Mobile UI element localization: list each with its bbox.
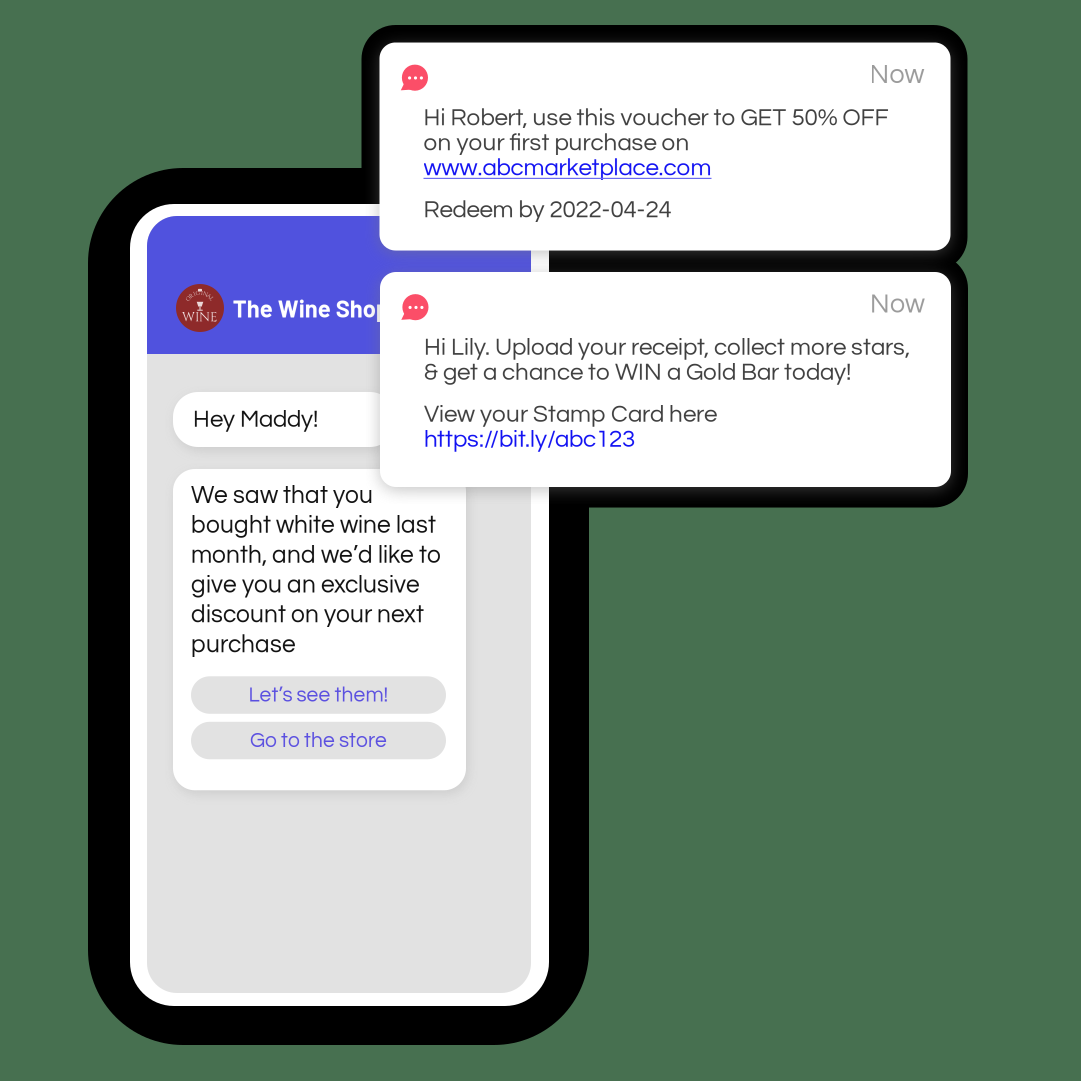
staticText: I bbox=[193, 290, 195, 298]
staticText: www.abcmarketplace.com bbox=[423, 156, 711, 180]
staticText: WINE bbox=[182, 308, 218, 326]
button[interactable]: Let’s see them! bbox=[191, 676, 446, 714]
staticText: View your Stamp Card here bbox=[424, 402, 717, 427]
staticText: L bbox=[210, 295, 213, 302]
staticText: G bbox=[196, 289, 201, 297]
staticText: R bbox=[189, 292, 193, 300]
staticText: Now bbox=[869, 61, 924, 89]
staticText: We saw that you bought white wine last m… bbox=[191, 483, 441, 657]
staticText: The Wine Shop bbox=[233, 294, 389, 322]
staticText: O bbox=[186, 295, 191, 302]
staticText: N bbox=[203, 290, 208, 298]
staticText: Now bbox=[870, 291, 925, 318]
staticText: Let’s see them! bbox=[248, 684, 388, 706]
staticText: Hi Robert, use this voucher to GET 50% O… bbox=[423, 106, 888, 130]
staticText: A bbox=[207, 292, 211, 300]
button[interactable]: Go to the store bbox=[191, 722, 446, 759]
staticText: Redeem by 2022-04-24 bbox=[423, 198, 671, 222]
staticText: I bbox=[201, 289, 203, 297]
staticText: Go to the store bbox=[250, 730, 387, 751]
staticText: & get a chance to WIN a Gold Bar today! bbox=[424, 360, 851, 385]
staticText: https://bit.ly/abc123 bbox=[424, 427, 635, 452]
staticText: Hi Lily. Upload your receipt, collect mo… bbox=[424, 335, 910, 360]
staticText: on your first purchase on bbox=[423, 131, 689, 155]
staticText: Hey Maddy! bbox=[193, 407, 318, 432]
